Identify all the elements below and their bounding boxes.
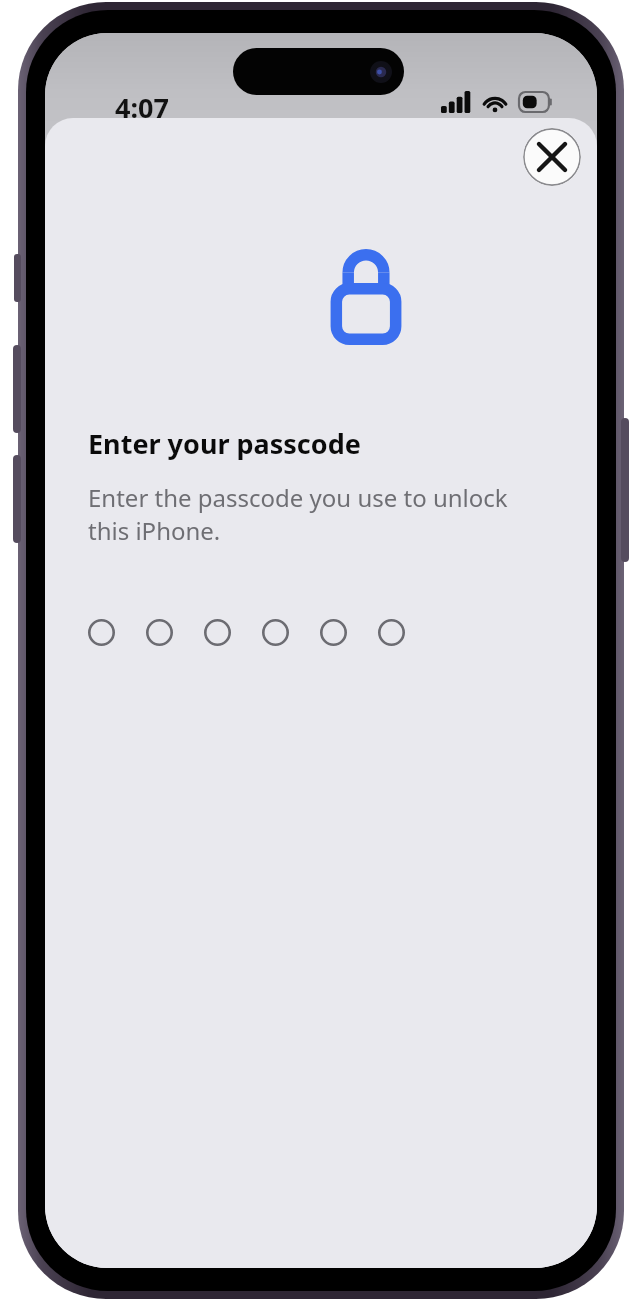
button[interactable] — [146, 612, 204, 652]
button[interactable] — [88, 612, 146, 652]
button[interactable] — [204, 612, 262, 652]
button[interactable] — [262, 612, 320, 652]
button[interactable] — [320, 612, 378, 652]
staticText: Enter the passcode you use to unlock thi… — [88, 481, 508, 547]
staticText: Enter your passcode — [88, 425, 361, 462]
button[interactable] — [378, 612, 436, 652]
staticText: 4:07 — [115, 89, 169, 126]
button[interactable]: Close — [523, 128, 581, 186]
